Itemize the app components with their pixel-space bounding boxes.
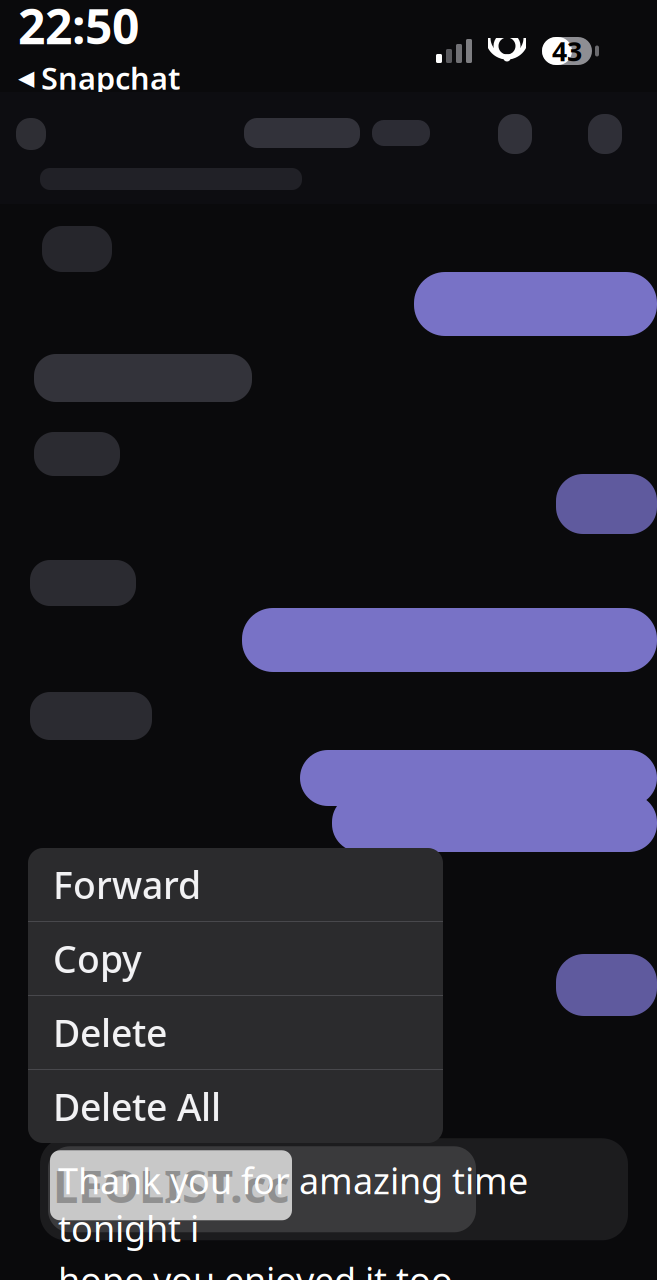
button[interactable]: Back to Snapchat [18, 57, 180, 98]
staticText: Copy [53, 934, 142, 983]
button[interactable]: Delete [28, 996, 443, 1069]
button[interactable]: Forward [28, 848, 443, 921]
staticText: Thank you for amazing time tonight i [58, 1156, 528, 1252]
staticText: ◀ [18, 66, 34, 90]
staticText: 22:50 [18, 0, 139, 57]
staticText: 43 [552, 33, 582, 69]
staticText: Delete All [53, 1082, 221, 1131]
button[interactable]: Delete All [28, 1070, 443, 1143]
staticText: Snapchat [41, 57, 180, 98]
staticText: Delete [53, 1008, 167, 1057]
staticText: LEOLIST.cc [53, 1155, 289, 1215]
staticText: Forward [53, 860, 201, 909]
button[interactable]: Copy [28, 922, 443, 995]
staticText: hope you enjoyed it too [58, 1256, 453, 1280]
